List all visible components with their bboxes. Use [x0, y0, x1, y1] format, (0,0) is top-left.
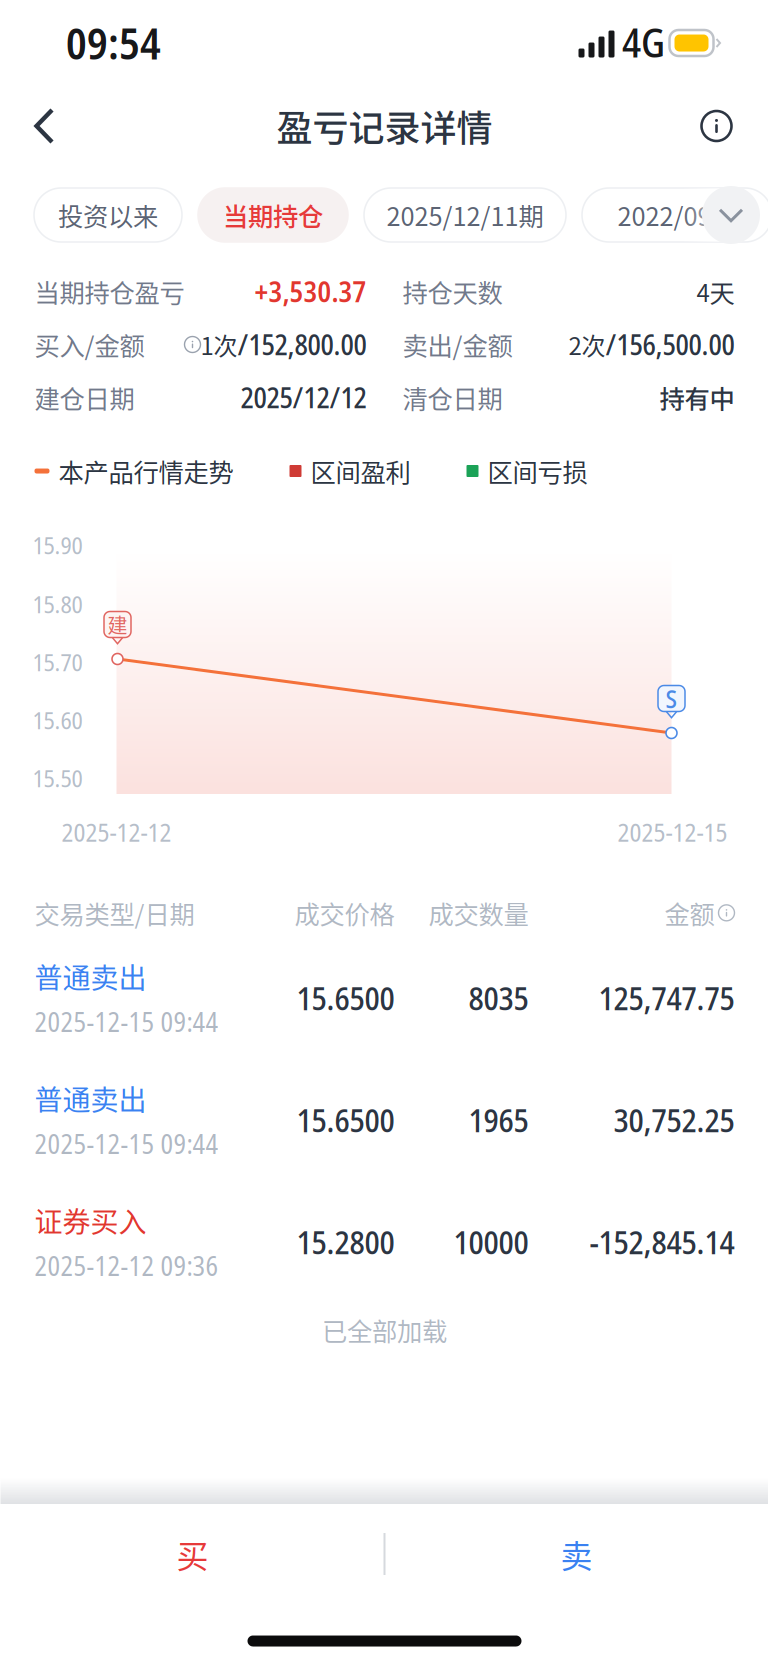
staticText: 建	[107, 610, 127, 639]
staticText: 普通卖出	[34, 956, 146, 996]
button[interactable]: 当期持仓	[198, 188, 348, 242]
staticText: 4	[696, 274, 709, 309]
staticText: S	[665, 681, 677, 716]
button[interactable]: 返回	[8, 88, 80, 164]
staticText: 2025/12/11期	[386, 197, 543, 233]
button[interactable]: 卖	[384, 1504, 768, 1604]
staticText: 2025-12-15	[617, 815, 727, 849]
staticText: 买	[176, 1531, 208, 1577]
staticText: 区间盈利	[310, 453, 410, 489]
staticText: 15.6500	[296, 1098, 394, 1142]
staticText: 当期持仓盈亏	[34, 273, 184, 310]
staticText: 2025-12-12	[61, 815, 171, 849]
staticText: 2025/12/12	[240, 378, 366, 416]
staticText: 已全部加载	[322, 1312, 447, 1348]
staticText: 卖出/金额	[402, 326, 512, 363]
staticText: 2025-12-15 09:44	[34, 1125, 218, 1162]
staticText: 成交数量	[428, 894, 528, 931]
staticText: 成交价格	[294, 894, 394, 931]
staticText: 投资以来	[58, 197, 158, 233]
staticText: 15.70	[32, 646, 82, 678]
button[interactable]: 说明	[678, 88, 754, 164]
staticText: 交易类型/日期	[34, 894, 194, 931]
staticText: 09:54	[66, 14, 161, 72]
staticText: 持有中	[659, 379, 734, 416]
staticText: 2022/09期	[617, 197, 736, 233]
staticText: 125,747.75	[598, 976, 734, 1020]
staticText: 当期持仓	[223, 197, 323, 233]
staticText: 卖	[560, 1531, 592, 1577]
staticText: /152,800.00	[237, 325, 366, 363]
staticText: 持仓天数	[402, 273, 502, 310]
staticText: 2025-12-15 09:44	[34, 1003, 218, 1040]
staticText: 15.6500	[296, 976, 394, 1020]
staticText: 金额	[664, 894, 714, 931]
staticText: 普通卖出	[34, 1078, 146, 1118]
staticText: 买入/金额	[34, 326, 144, 363]
staticText: 1965	[468, 1098, 528, 1142]
staticText: +3,530.37	[254, 272, 366, 310]
staticText: -152,845.14	[589, 1220, 734, 1264]
staticText: 15.90	[32, 529, 82, 561]
staticText: 天	[709, 273, 734, 310]
staticText: 建仓日期	[34, 379, 134, 416]
staticText: 本产品行情走势	[58, 453, 233, 489]
staticText: 2025-12-12 09:36	[34, 1247, 218, 1284]
staticText: 盈亏记录详情	[276, 100, 492, 152]
staticText: 30,752.25	[613, 1098, 734, 1142]
button[interactable]: 2025/12/11期	[364, 188, 566, 242]
staticText: 清仓日期	[402, 379, 502, 416]
button[interactable]: 买	[0, 1504, 384, 1604]
staticText: /156,500.00	[605, 325, 734, 363]
staticText: 2次	[568, 327, 605, 362]
staticText: 证券买入	[34, 1200, 146, 1240]
staticText: 10000	[453, 1220, 528, 1264]
staticText: 15.50	[32, 762, 82, 794]
staticText: 15.60	[32, 704, 82, 736]
staticText: 8035	[468, 976, 528, 1020]
button[interactable]: 投资以来	[34, 188, 182, 242]
button[interactable]: 展开更多期数	[702, 186, 760, 244]
staticText: 1次	[200, 327, 237, 362]
staticText: 15.80	[32, 588, 82, 620]
staticText: 4G	[622, 15, 665, 69]
staticText: 15.2800	[296, 1220, 394, 1264]
button[interactable]: 2022/09期	[582, 188, 768, 242]
staticText: 区间亏损	[487, 453, 587, 489]
